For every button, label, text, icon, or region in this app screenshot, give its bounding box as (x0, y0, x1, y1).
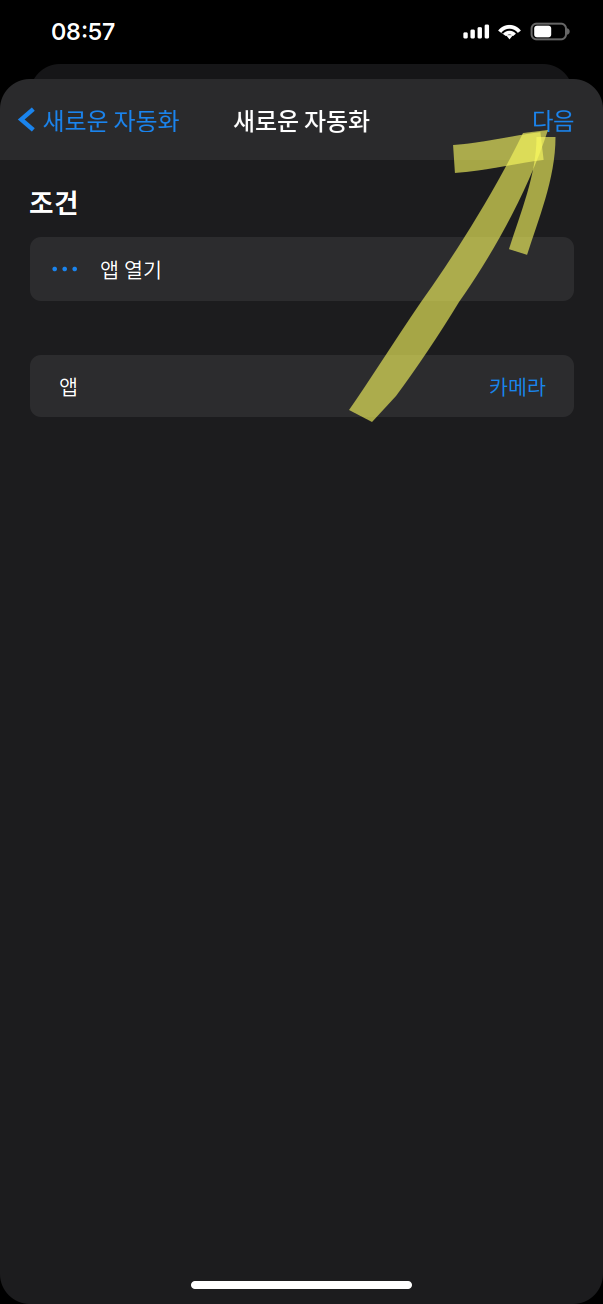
staticText: 새로운 자동화 (42, 102, 179, 137)
button[interactable]: 앱 (30, 355, 574, 417)
staticText: 앱 열기 (100, 254, 162, 284)
button[interactable]: 앱 열기 (30, 237, 574, 301)
button[interactable]: 다음 (517, 88, 589, 150)
staticText: 08:57 (51, 17, 115, 46)
staticText: 새로운 자동화 (233, 102, 370, 137)
staticText: 앱 (59, 371, 78, 401)
staticText: 카메라 (489, 371, 546, 401)
staticText: 다음 (532, 103, 574, 136)
button[interactable]: 새로운 자동화 (0, 88, 191, 150)
staticText: 조건 (29, 182, 79, 221)
